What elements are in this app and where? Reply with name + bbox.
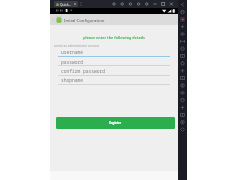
other: More options <box>80 2 82 6</box>
button[interactable]: Register <box>56 117 175 129</box>
staticText: confirm password <box>61 68 106 74</box>
staticText: Register <box>109 121 122 125</box>
staticText: password <box>61 59 84 65</box>
staticText: Initial Configuration <box>64 17 105 23</box>
staticText: create an administrator account <box>54 44 100 48</box>
button[interactable]: Browser tab <box>54 1 78 7</box>
staticText: Quick… <box>60 3 72 7</box>
other: Emulator tools <box>178 0 187 180</box>
staticText: please enter the following details <box>50 35 178 40</box>
staticText: shopname <box>61 77 84 83</box>
button[interactable]: Back <box>50 14 178 25</box>
staticText: username <box>61 49 84 55</box>
other: Back <box>52 17 55 22</box>
